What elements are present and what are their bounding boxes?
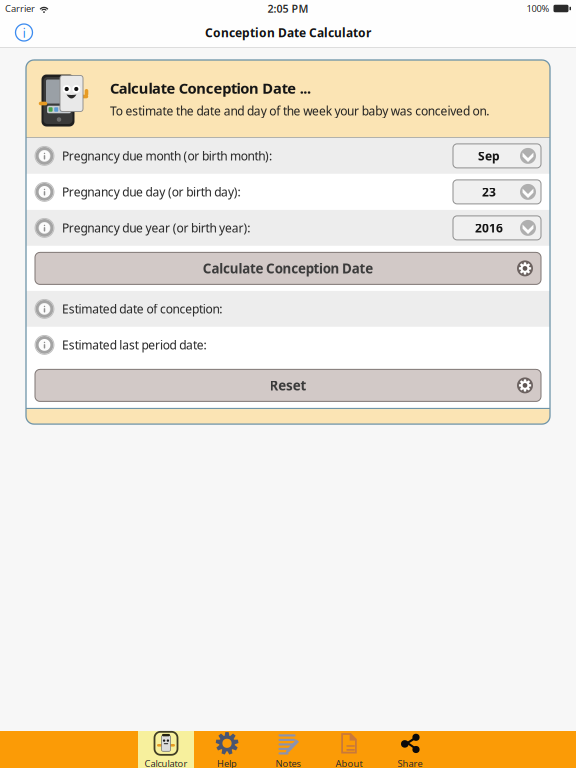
button[interactable]: Help — [199, 731, 255, 768]
staticText: Sep — [478, 148, 500, 164]
staticText: i — [22, 24, 25, 41]
button[interactable]: Estimated last period date: — [26, 327, 550, 363]
button[interactable]: Info — [8, 18, 40, 46]
button[interactable]: About — [321, 731, 377, 768]
button[interactable]: Sep — [453, 144, 541, 168]
staticText: Pregnancy due day (or birth day): — [62, 184, 241, 200]
staticText: 2016 — [475, 220, 503, 236]
staticText: 23 — [482, 184, 496, 200]
staticText: Pregnancy due month (or birth month): — [62, 148, 272, 164]
staticText: Notes — [275, 757, 300, 768]
staticText: Estimated last period date: — [62, 337, 207, 353]
staticText: Help — [217, 757, 237, 768]
staticText: To estimate the date and day of the week… — [110, 103, 489, 119]
button[interactable]: Reset — [26, 369, 550, 401]
staticText: Calculator — [144, 757, 187, 768]
button[interactable]: 2016 — [453, 216, 541, 240]
button[interactable]: Share — [382, 731, 438, 768]
button[interactable]: Calculator — [138, 731, 194, 768]
staticText: Estimated date of conception: — [62, 301, 222, 317]
staticText: Calculate Conception Date — [203, 259, 373, 277]
staticText: Share — [397, 757, 422, 768]
staticText: Reset — [270, 376, 306, 394]
staticText: 100% — [526, 2, 549, 15]
button[interactable]: Notes — [260, 731, 316, 768]
button[interactable]: 23 — [453, 180, 541, 204]
staticText: Calculate Conception Date ... — [110, 78, 311, 98]
staticText: Conception Date Calculator — [205, 24, 371, 40]
staticText: Pregnancy due year (or birth year): — [62, 220, 250, 236]
staticText: Carrier — [5, 2, 35, 15]
staticText: About — [335, 757, 362, 768]
button[interactable]: Calculate Conception Date — [26, 252, 550, 284]
staticText: 2:05 PM — [267, 1, 308, 16]
button[interactable]: Estimated date of conception: — [26, 291, 550, 327]
